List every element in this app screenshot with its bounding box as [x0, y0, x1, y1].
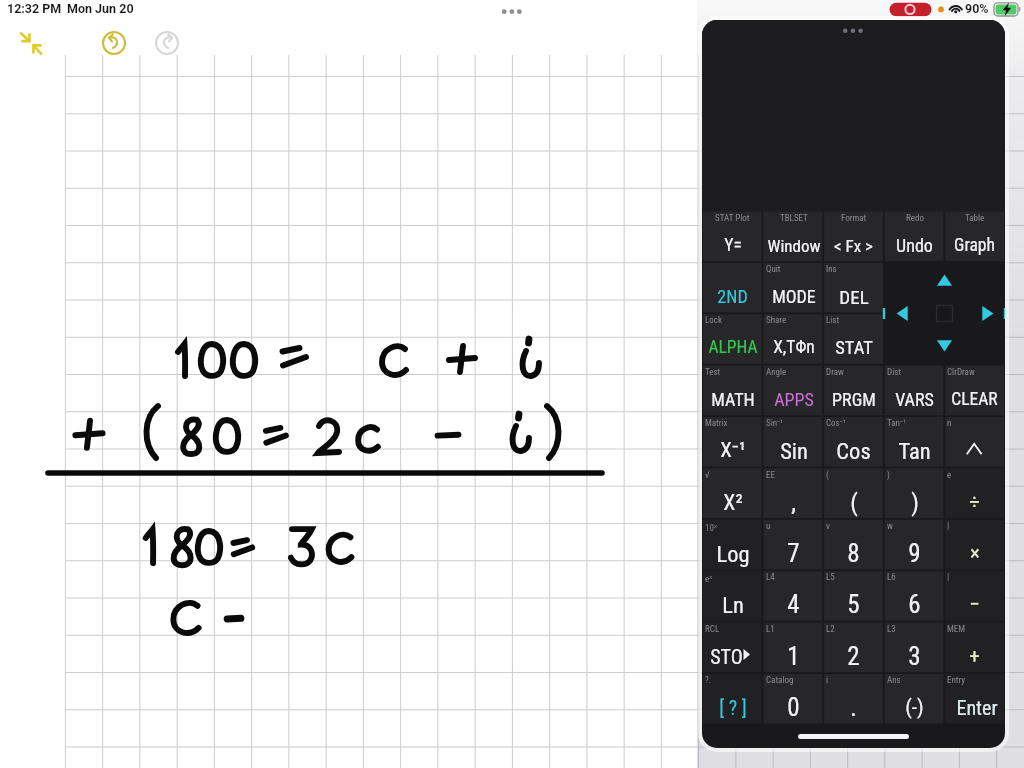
button[interactable]: )	[884, 468, 945, 519]
staticText: +	[969, 644, 980, 669]
staticText: L5	[826, 572, 835, 583]
staticText: Tan	[898, 438, 931, 464]
staticText: X²	[723, 490, 743, 516]
staticText: Lock	[705, 315, 723, 326]
staticText: Enter	[956, 696, 998, 719]
button[interactable]: Ins	[823, 262, 884, 313]
button[interactable]: Matrix	[702, 416, 763, 467]
button[interactable]: Redo	[884, 211, 945, 262]
button[interactable]: Collapse	[16, 28, 48, 60]
staticText: X,TΦn	[773, 337, 815, 358]
staticText: DEL	[839, 286, 869, 308]
button[interactable]: |	[944, 570, 1005, 621]
button[interactable]: Ans	[884, 673, 945, 724]
staticText: PRGM	[832, 389, 876, 410]
staticText: 8	[847, 539, 860, 568]
staticText: Ln	[722, 592, 744, 618]
staticText: 4	[787, 590, 800, 619]
staticText: Quit	[766, 264, 781, 275]
staticText: Test	[705, 367, 721, 378]
staticText: Dist	[887, 367, 901, 378]
button[interactable]: Undo	[100, 29, 128, 57]
button[interactable]: |	[944, 519, 1005, 570]
button[interactable]: n	[944, 416, 1005, 467]
staticText: u	[766, 521, 771, 532]
button[interactable]: RCL	[702, 622, 763, 673]
button[interactable]: Entry	[944, 673, 1005, 724]
staticText: 7	[787, 539, 800, 568]
staticText: Format	[841, 213, 867, 224]
button[interactable]: u	[763, 519, 824, 570]
staticText: MEM	[947, 624, 966, 635]
staticText: 2	[847, 642, 860, 671]
button[interactable]: √	[702, 468, 763, 519]
staticText: STAT Plot	[715, 213, 750, 224]
button[interactable]: Table	[944, 211, 1005, 262]
staticText: 3	[908, 642, 921, 671]
button[interactable]: w	[884, 519, 945, 570]
button[interactable]: L1	[763, 622, 824, 673]
button[interactable]: i	[823, 673, 884, 724]
staticText: 5	[847, 590, 860, 619]
staticText: Sin⁻¹	[766, 418, 784, 429]
button[interactable]: L6	[884, 570, 945, 621]
button[interactable]: Angle	[763, 365, 824, 416]
staticText: √	[705, 470, 710, 481]
button[interactable]: L3	[884, 622, 945, 673]
button[interactable]: 2ND	[702, 262, 763, 313]
staticText: 9	[908, 539, 921, 568]
button[interactable]: Catalog	[763, 673, 824, 724]
button[interactable]: List	[823, 313, 884, 364]
button[interactable]: Sin⁻¹	[763, 416, 824, 467]
staticText: MODE	[772, 286, 816, 307]
button[interactable]: TBLSET	[763, 211, 824, 262]
staticText: Share	[766, 315, 787, 326]
button[interactable]: e	[944, 468, 1005, 519]
button[interactable]: Cos⁻¹	[823, 416, 884, 467]
staticText: ?.	[705, 675, 712, 686]
staticText: 90%	[965, 1, 989, 16]
button[interactable]: v	[823, 519, 884, 570]
button[interactable]: Direction pad	[884, 262, 1005, 365]
staticText: Cos	[836, 438, 871, 464]
button[interactable]: STAT Plot	[702, 211, 763, 262]
staticText: Cos⁻¹	[826, 418, 846, 429]
staticText: Entry	[947, 675, 966, 686]
staticText: TBLSET	[780, 213, 808, 224]
button[interactable]: ?.	[702, 673, 763, 724]
button[interactable]: L4	[763, 570, 824, 621]
button[interactable]: 10ˣ	[702, 519, 763, 570]
button[interactable]: (	[823, 468, 884, 519]
button[interactable]: eˣ	[702, 570, 763, 621]
button[interactable]: Tan⁻¹	[884, 416, 945, 467]
staticText: MATH	[711, 389, 755, 410]
staticText: X⁻¹	[720, 438, 746, 463]
staticText: Tan⁻¹	[887, 418, 906, 429]
staticText: ALPHA	[708, 337, 758, 358]
staticText: Matrix	[705, 418, 728, 429]
button[interactable]: MEM	[944, 622, 1005, 673]
button[interactable]: Redo	[153, 29, 181, 57]
button[interactable]: Quit	[763, 262, 824, 313]
button[interactable]: Share	[763, 313, 824, 364]
button[interactable]: EE	[763, 468, 824, 519]
button[interactable]: Test	[702, 365, 763, 416]
button[interactable]: Draw	[823, 365, 884, 416]
button[interactable]: ClrDraw	[944, 365, 1005, 416]
staticText: Log	[716, 541, 750, 567]
staticText: Draw	[826, 367, 844, 378]
staticText: )	[887, 470, 890, 481]
staticText: w	[887, 521, 893, 532]
button[interactable]: L5	[823, 570, 884, 621]
staticText: i	[826, 675, 829, 686]
button[interactable]: Format	[823, 211, 884, 262]
staticText: Catalog	[766, 675, 794, 686]
staticText: L4	[766, 572, 775, 583]
button[interactable]: L2	[823, 622, 884, 673]
button[interactable]: Dist	[884, 365, 945, 416]
staticText: Table	[965, 213, 985, 224]
staticText: |	[947, 521, 950, 532]
staticText: Angle	[766, 367, 787, 378]
button[interactable]: Lock	[702, 313, 763, 364]
staticText: .	[850, 693, 857, 722]
